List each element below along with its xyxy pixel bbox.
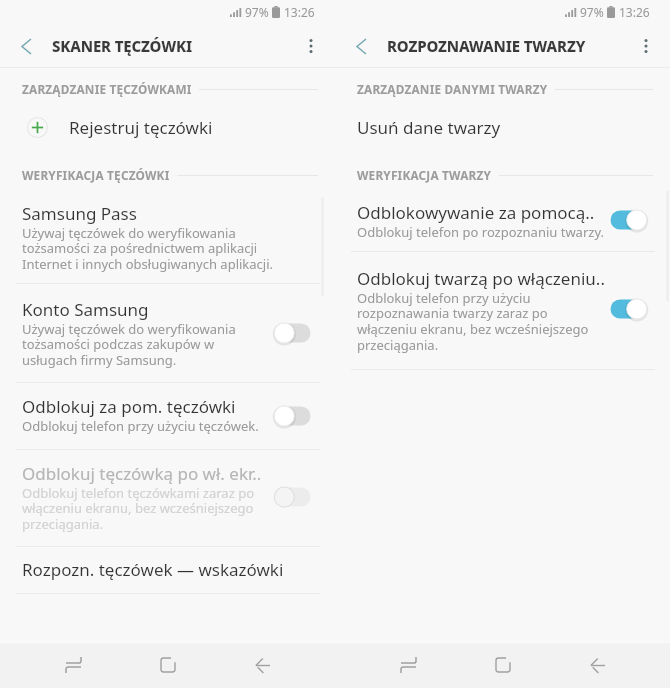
staticText: Odblokuj telefon przy użyciu tęczówek. — [22, 417, 259, 435]
staticText: WERYFIKACJA TĘCZÓWKI — [22, 167, 170, 183]
staticText: Odblokuj za pom. tęczówki — [22, 395, 236, 418]
staticText: SKANER TĘCZÓWKI — [52, 36, 193, 56]
staticText: 13:26 — [284, 4, 315, 20]
staticText: Odblokuj telefon tęczówkami zaraz po włą… — [22, 484, 255, 533]
button[interactable] — [0, 104, 335, 151]
staticText: Rozpozn. tęczówek — wskazówki — [22, 558, 284, 581]
button[interactable]: Back — [341, 26, 381, 66]
staticText: 13:26 — [619, 4, 650, 20]
button[interactable]: Toggle — [270, 402, 316, 430]
staticText: Odblokuj telefon po rozpoznaniu twarzy. — [357, 223, 604, 241]
button[interactable]: Back — [573, 642, 621, 688]
button[interactable] — [0, 284, 335, 382]
button[interactable]: Toggle — [270, 319, 316, 347]
staticText: Konto Samsung — [22, 298, 149, 321]
staticText: Odblokowywanie za pomocą.. — [357, 201, 595, 224]
staticText: ZARZĄDZANIE TĘCZÓWKAMI — [22, 81, 192, 97]
button[interactable]: More options — [626, 26, 666, 66]
button[interactable] — [0, 450, 335, 546]
button[interactable]: Recents — [384, 642, 432, 688]
button[interactable]: Back — [6, 26, 46, 66]
staticText: WERYFIKACJA TWARZY — [357, 167, 492, 183]
button[interactable]: Toggle — [605, 206, 651, 234]
button[interactable] — [335, 252, 670, 369]
button[interactable]: More options — [291, 26, 331, 66]
button[interactable]: Toggle — [605, 295, 651, 323]
button[interactable] — [335, 192, 670, 251]
button[interactable]: Home — [479, 642, 527, 688]
button[interactable]: Toggle — [270, 483, 316, 511]
staticText: Rejestruj tęczówki — [69, 116, 213, 139]
staticText: Używaj tęczówek do weryfikowania tożsamo… — [22, 320, 236, 369]
staticText: ZARZĄDZANIE DANYMI TWARZY — [357, 81, 548, 97]
staticText: Odblokuj telefon przy użyciu rozpoznawan… — [357, 289, 589, 354]
button[interactable] — [0, 192, 335, 283]
staticText: Usuń dane twarzy — [357, 116, 501, 139]
button[interactable] — [0, 383, 335, 449]
button[interactable]: Home — [144, 642, 192, 688]
button[interactable] — [0, 547, 335, 593]
button[interactable] — [335, 104, 670, 151]
staticText: Samsung Pass — [22, 202, 137, 225]
staticText: Odblokuj twarzą po włączeniu.. — [357, 267, 605, 290]
staticText: ROZPOZNAWANIE TWARZY — [387, 36, 586, 56]
button[interactable]: Back — [238, 642, 286, 688]
staticText: 97% — [245, 4, 269, 20]
button[interactable]: Recents — [49, 642, 97, 688]
staticText: Odblokuj tęczówką po wł. ekr.. — [22, 462, 262, 485]
staticText: Używaj tęczówek do weryfikowania tożsamo… — [22, 224, 274, 273]
staticText: 97% — [580, 4, 604, 20]
